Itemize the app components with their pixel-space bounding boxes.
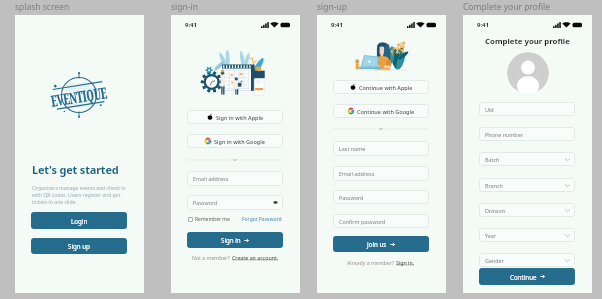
button[interactable]: Password: [333, 190, 429, 204]
staticText: Sign in: [221, 236, 241, 244]
other: Expand: [565, 234, 570, 237]
staticText: Continue with Apple: [359, 84, 413, 91]
staticText: Let's get started: [32, 162, 119, 177]
staticText: Continue with Google: [357, 108, 415, 115]
staticText: or: [379, 126, 384, 132]
button[interactable]: Gender: [479, 253, 575, 267]
button[interactable]: Last name: [333, 141, 429, 156]
staticText: Continue: [510, 273, 537, 281]
staticText: 9:41: [331, 21, 343, 29]
button[interactable]: Continue with Google: [333, 104, 429, 118]
staticText: Sign in with Google: [214, 138, 265, 145]
other: Expand: [565, 184, 570, 187]
staticText: Password: [193, 199, 218, 206]
staticText: EVENTIQUE: [49, 82, 109, 111]
button[interactable]: Email address: [187, 171, 283, 186]
staticText: Gender: [485, 257, 504, 264]
staticText: sign-in: [171, 1, 198, 13]
staticText: Year: [485, 232, 497, 239]
button[interactable]: Email address: [333, 166, 429, 181]
button[interactable]: Year: [479, 228, 575, 242]
staticText: sign-up: [317, 1, 347, 13]
button[interactable]: Sign in.: [396, 259, 415, 266]
staticText: Batch: [485, 156, 500, 163]
staticText: Login: [71, 217, 88, 225]
button[interactable]: Password: [187, 195, 283, 210]
button[interactable]: Confirm password: [333, 214, 429, 228]
staticText: Password: [339, 194, 364, 201]
button[interactable]: Division: [479, 203, 575, 217]
staticText: Join us: [367, 240, 387, 248]
staticText: Organizers manage events and check in wi…: [32, 185, 129, 206]
button[interactable]: Sign in with Apple: [187, 110, 283, 124]
button[interactable]: Join us: [333, 236, 429, 252]
staticText: Division: [485, 207, 506, 214]
button[interactable]: Continue: [479, 268, 575, 285]
staticText: Already a member?: [347, 259, 396, 266]
button[interactable]: Branch: [479, 178, 575, 192]
button[interactable]: Create an account.: [232, 254, 279, 261]
staticText: Last name: [339, 145, 366, 152]
staticText: Email address: [339, 170, 375, 177]
staticText: Complete your profile: [485, 36, 570, 47]
button[interactable]: Sign in: [187, 232, 283, 248]
staticText: Phone number: [485, 131, 523, 138]
other: Expand: [565, 158, 570, 161]
staticText: Confirm password: [339, 218, 386, 225]
staticText: 9:41: [477, 21, 489, 29]
button[interactable]: Sign in with Google: [187, 134, 283, 148]
button[interactable]: Remember me: [187, 215, 231, 224]
button[interactable]: Login: [31, 212, 127, 229]
other: Expand: [565, 209, 570, 212]
button[interactable]: Phone number: [479, 127, 575, 141]
staticText: Complete your profile: [463, 1, 551, 13]
staticText: Sign up: [68, 242, 90, 250]
staticText: 9:41: [185, 21, 197, 29]
button[interactable]: Uid: [479, 102, 575, 116]
staticText: Branch: [485, 182, 503, 189]
button[interactable]: Forgot Password: [241, 215, 283, 224]
staticText: Remember me: [195, 216, 230, 223]
staticText: or: [233, 157, 238, 163]
button[interactable]: Change profile photo: [507, 52, 549, 94]
staticText: Sign in with Apple: [216, 114, 264, 121]
staticText: Uid: [485, 106, 494, 113]
staticText: Email address: [193, 175, 229, 182]
other: Expand: [565, 259, 570, 262]
staticText: splash screen: [15, 1, 70, 13]
button[interactable]: Sign up: [31, 238, 127, 254]
staticText: Not a member?: [192, 254, 232, 261]
button[interactable]: Batch: [479, 152, 575, 166]
button[interactable]: Continue with Apple: [333, 80, 429, 94]
other: Show password: [273, 200, 278, 205]
